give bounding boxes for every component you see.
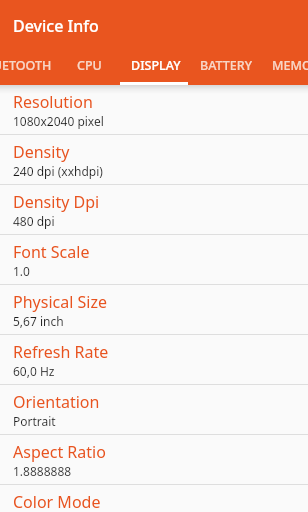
staticText: MEMORY (272, 57, 308, 74)
button[interactable]: Orientation (0, 385, 308, 435)
staticText: Portrait (13, 413, 56, 429)
staticText: Refresh Rate (13, 341, 109, 363)
staticText: Physical Size (13, 291, 107, 313)
staticText: 240 dpi (xxhdpi) (13, 163, 103, 179)
staticText: 480 dpi (13, 213, 55, 229)
button[interactable]: Color Mode (0, 485, 308, 512)
staticText: 60,0 Hz (13, 363, 55, 379)
button[interactable]: DISPLAY (122, 45, 190, 85)
staticText: Orientation (13, 391, 100, 413)
staticText: Color Mode (13, 491, 101, 512)
staticText: Device Info (13, 15, 99, 37)
button[interactable]: Refresh Rate (0, 335, 308, 385)
button[interactable]: BLUETOOTH (0, 45, 46, 85)
button[interactable]: Density (0, 135, 308, 185)
button[interactable]: BATTERY (192, 45, 260, 85)
staticText: Resolution (13, 91, 93, 113)
button[interactable]: CPU (55, 45, 123, 85)
staticText: 1080x2040 pixel (13, 113, 104, 129)
staticText: Density Dpi (13, 191, 100, 213)
button[interactable]: Aspect Ratio (0, 435, 308, 485)
button[interactable]: Font Scale (0, 235, 308, 285)
staticText: DISPLAY (131, 57, 181, 74)
staticText: 1.8888888 (13, 463, 72, 479)
staticText: CPU (77, 57, 102, 74)
staticText: BATTERY (200, 57, 252, 74)
staticText: 1.0 (13, 263, 30, 279)
staticText: BLUETOOTH (0, 57, 46, 74)
staticText: Aspect Ratio (13, 441, 106, 463)
button[interactable]: Density Dpi (0, 185, 308, 235)
staticText: Density (13, 141, 70, 163)
button[interactable]: Resolution (0, 85, 308, 135)
staticText: 5,67 inch (13, 313, 64, 329)
button[interactable]: Physical Size (0, 285, 308, 335)
button[interactable]: MEMORY (265, 45, 308, 85)
staticText: Font Scale (13, 241, 90, 263)
